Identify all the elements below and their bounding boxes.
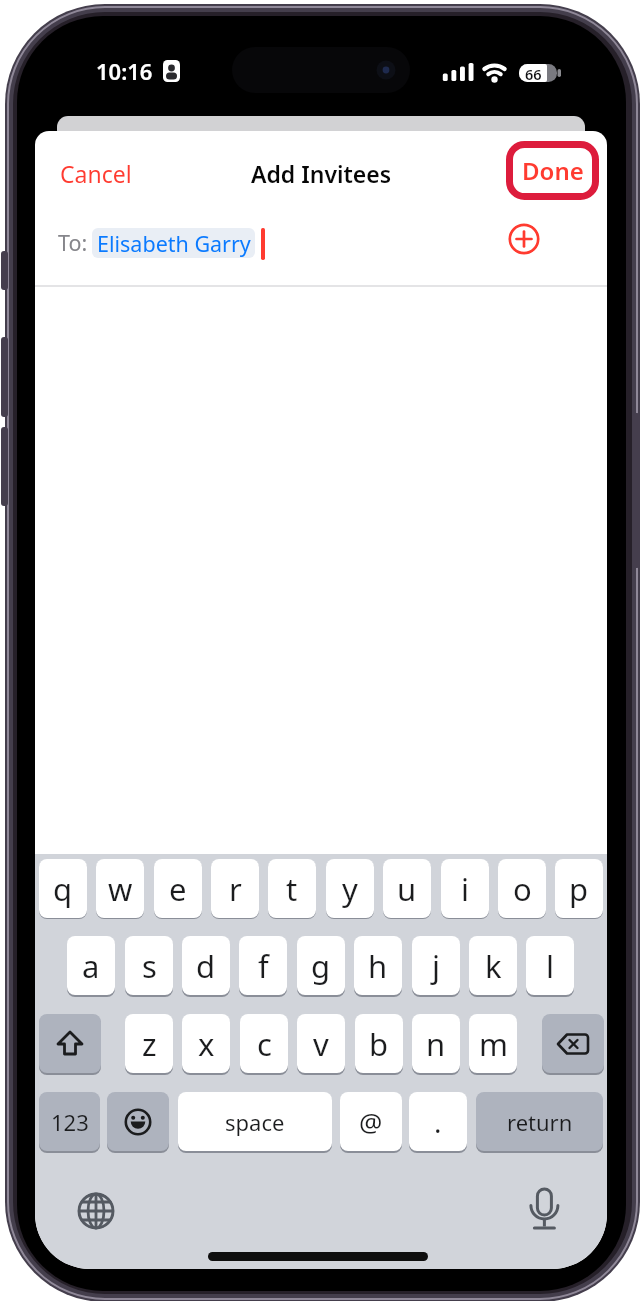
button[interactable]: b	[355, 1014, 403, 1073]
staticText: q	[53, 868, 73, 910]
staticText: return	[507, 1107, 573, 1137]
button[interactable]: .	[409, 1092, 467, 1151]
button[interactable]: a	[67, 936, 115, 995]
staticText: r	[229, 868, 242, 910]
button[interactable]: q	[39, 859, 87, 918]
staticText: t	[286, 868, 298, 910]
staticText: Done	[522, 154, 584, 187]
button[interactable]	[77, 1192, 115, 1230]
staticText: v	[313, 1023, 329, 1065]
staticText: Add Invitees	[251, 158, 392, 189]
staticText: z	[142, 1023, 157, 1065]
button[interactable]: p	[555, 859, 603, 918]
staticText: Cancel	[60, 158, 132, 189]
button[interactable]	[542, 1014, 604, 1073]
staticText: m	[479, 1023, 508, 1065]
staticText: 10:16	[96, 56, 153, 86]
button[interactable]: n	[412, 1014, 460, 1073]
button[interactable]: h	[354, 936, 402, 995]
button[interactable]: z	[125, 1014, 173, 1073]
staticText: g	[311, 945, 331, 987]
button[interactable]: Cancel	[48, 157, 143, 189]
staticText: c	[257, 1023, 272, 1065]
button[interactable]: j	[412, 936, 460, 995]
button[interactable]: s	[125, 936, 173, 995]
staticText: @	[359, 1104, 383, 1139]
button[interactable]: u	[383, 859, 431, 918]
button[interactable]: l	[526, 936, 574, 995]
staticText: h	[368, 945, 388, 987]
button[interactable]: return	[476, 1092, 603, 1151]
button[interactable]: m	[469, 1014, 517, 1073]
staticText: o	[513, 868, 532, 910]
button[interactable]: 123	[39, 1092, 100, 1151]
staticText: 66	[525, 64, 542, 82]
button[interactable]	[107, 1092, 169, 1151]
staticText: k	[485, 945, 502, 987]
staticText: Elisabeth Garry	[97, 229, 251, 258]
button[interactable]: y	[326, 859, 374, 918]
staticText: space	[225, 1107, 285, 1137]
staticText: i	[461, 868, 469, 910]
button[interactable]: f	[239, 936, 287, 995]
button[interactable]: space	[178, 1092, 332, 1151]
button[interactable]: r	[211, 859, 259, 918]
staticText: l	[546, 945, 554, 987]
staticText: d	[196, 945, 216, 987]
button[interactable]	[524, 1186, 566, 1234]
staticText: y	[342, 868, 358, 910]
button[interactable]: d	[182, 936, 230, 995]
staticText: n	[426, 1023, 446, 1065]
staticText: s	[142, 945, 157, 987]
button[interactable]: @	[340, 1092, 402, 1151]
staticText: b	[369, 1023, 389, 1065]
staticText: w	[108, 868, 133, 910]
button[interactable]: i	[441, 859, 489, 918]
staticText: 123	[51, 1107, 89, 1137]
staticText: .	[434, 1103, 442, 1141]
button[interactable]: o	[498, 859, 546, 918]
button[interactable]: e	[154, 859, 202, 918]
staticText: a	[82, 945, 100, 987]
button[interactable]: v	[297, 1014, 345, 1073]
staticText: e	[169, 868, 187, 910]
staticText: p	[569, 868, 589, 910]
button[interactable]	[39, 1014, 101, 1073]
staticText: f	[258, 945, 269, 987]
staticText: u	[397, 868, 417, 910]
button[interactable]: Done	[506, 154, 599, 187]
button[interactable]: t	[268, 859, 316, 918]
button[interactable]	[508, 223, 540, 255]
button[interactable]: c	[240, 1014, 288, 1073]
staticText: j	[432, 945, 440, 987]
button[interactable]: w	[96, 859, 144, 918]
button[interactable]: k	[469, 936, 517, 995]
button[interactable]: x	[182, 1014, 230, 1073]
staticText: x	[198, 1023, 215, 1065]
button[interactable]: g	[297, 936, 345, 995]
staticText: To:	[58, 228, 88, 257]
